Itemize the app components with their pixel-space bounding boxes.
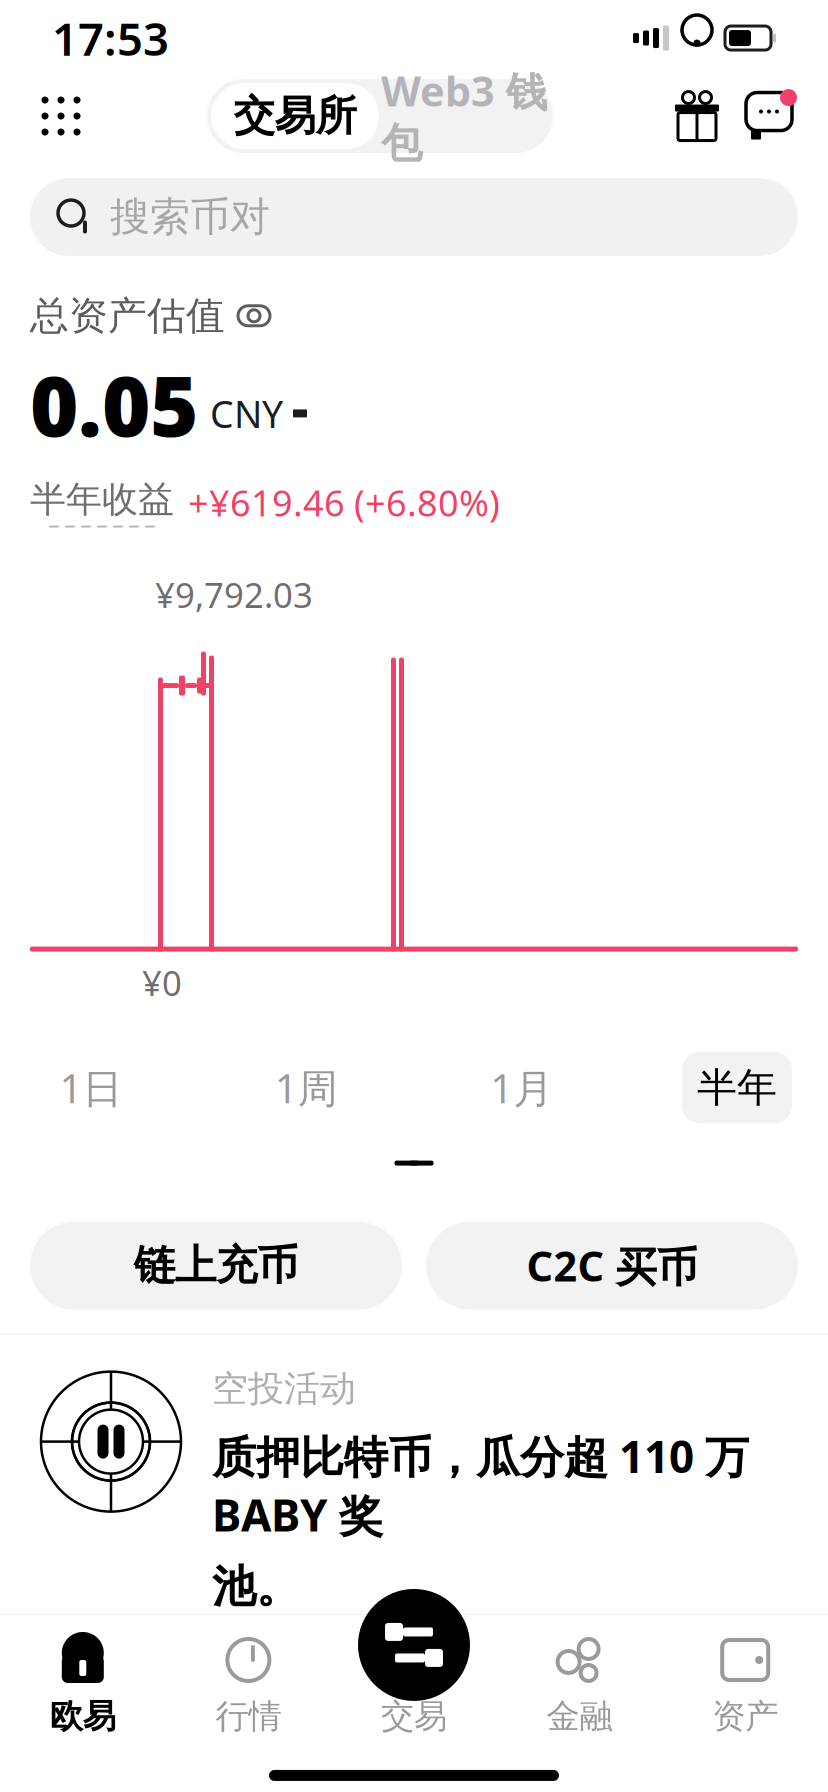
staticText: 1月 — [490, 1061, 553, 1114]
button[interactable]: Messages — [740, 87, 798, 145]
staticText: 搜索币对 — [110, 192, 270, 242]
staticText: 质押比特币，瓜分超 110 万 BABY 奖 — [212, 1427, 749, 1544]
staticText: 交易所 — [233, 91, 356, 141]
button[interactable]: 空投活动 — [0, 1335, 828, 1614]
staticText: 总资产估值 — [30, 292, 225, 339]
staticText: 欧易 — [50, 1696, 116, 1737]
staticText: 半年收益 — [30, 477, 174, 521]
button[interactable]: Rewards — [668, 87, 726, 145]
button[interactable]: 欧易 — [0, 1636, 166, 1737]
staticText: 1日 — [59, 1061, 122, 1114]
button[interactable]: Trade — [358, 1589, 470, 1701]
button[interactable]: 半年 — [682, 1052, 792, 1124]
button[interactable]: 1周 — [251, 1052, 361, 1124]
button[interactable]: 搜索币对 — [30, 178, 798, 256]
staticText: Web3 钱包 — [381, 63, 547, 169]
button[interactable]: Hide balance — [237, 301, 271, 331]
staticText: ¥9,792.03 — [155, 571, 313, 617]
button[interactable]: 1月 — [467, 1052, 577, 1124]
staticText: 资产 — [712, 1696, 778, 1737]
staticText: 交易 — [381, 1696, 447, 1737]
button[interactable]: 1日 — [36, 1052, 146, 1124]
staticText: 空投活动 — [212, 1367, 356, 1411]
staticText: 金融 — [547, 1696, 613, 1737]
button[interactable]: More — [30, 85, 92, 147]
button[interactable]: 交易 — [331, 1636, 497, 1737]
staticText: C2C 买币 — [526, 1238, 697, 1293]
button[interactable]: CNY — [198, 371, 307, 438]
staticText: +¥619.46 (+6.80%) — [188, 478, 500, 526]
staticText: 0.05 — [30, 349, 198, 459]
button[interactable]: 行情 — [166, 1636, 331, 1737]
button[interactable]: 链上充币 — [30, 1222, 402, 1310]
button[interactable]: 资产 — [662, 1636, 828, 1737]
button[interactable]: Collapse — [374, 1142, 454, 1190]
button[interactable]: Web3 钱包 — [379, 83, 549, 149]
staticText: 池。 — [212, 1560, 300, 1614]
staticText: CNY — [210, 389, 283, 438]
staticText: 链上充币 — [134, 1240, 298, 1291]
staticText: 1周 — [275, 1061, 338, 1114]
staticText: 行情 — [215, 1696, 281, 1737]
button[interactable]: C2C 买币 — [426, 1222, 798, 1310]
staticText: 17:53 — [52, 8, 169, 68]
button[interactable]: 交易所 — [211, 83, 379, 149]
staticText: 半年 — [697, 1063, 777, 1112]
button[interactable]: 金融 — [497, 1636, 662, 1737]
staticText: ¥0 — [142, 960, 182, 1006]
